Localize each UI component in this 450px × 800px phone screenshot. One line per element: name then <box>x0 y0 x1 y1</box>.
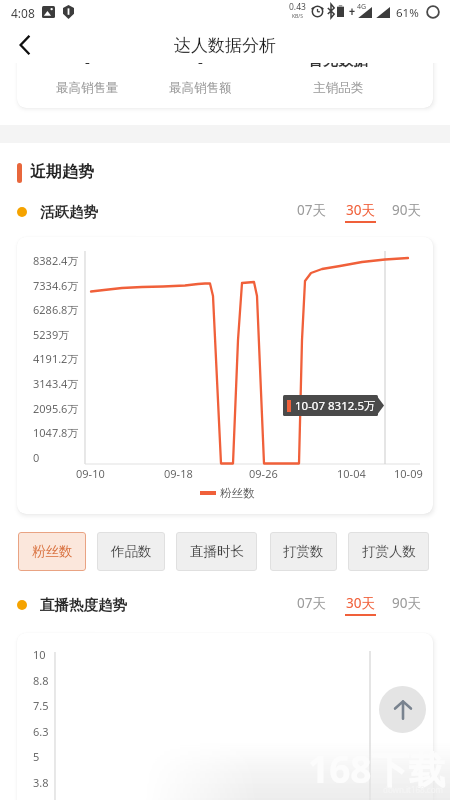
staticText: 4:08 <box>11 5 35 21</box>
staticText: 09-18 <box>164 466 193 481</box>
staticText: - <box>85 51 90 71</box>
staticText: down.it168.com <box>383 784 443 795</box>
staticText: 3143.4万 <box>33 376 79 391</box>
staticText: 07天 <box>297 201 326 219</box>
staticText: 2095.6万 <box>33 401 79 416</box>
staticText: 5 <box>33 749 40 764</box>
staticText: 10-07 8312.5万 <box>295 398 376 414</box>
staticText: 8.8 <box>33 673 49 688</box>
staticText: 粉丝数 <box>32 543 73 560</box>
staticText: 7.5 <box>33 698 49 713</box>
staticText: 主销品类 <box>313 80 363 96</box>
staticText: 30天 <box>346 594 375 612</box>
staticText: 近期趋势 <box>30 162 94 182</box>
staticText: 7334.6万 <box>33 278 79 293</box>
staticText: 09-10 <box>76 466 105 481</box>
staticText: 直播热度趋势 <box>40 596 127 614</box>
button[interactable]: 90天 <box>387 201 426 219</box>
staticText: KB/S <box>292 13 303 20</box>
staticText: 10 <box>33 647 46 662</box>
staticText: 10-09 <box>394 466 423 481</box>
staticText: 6.3 <box>33 724 49 739</box>
staticText: 6286.8万 <box>33 302 79 317</box>
staticText: 0.43 <box>289 1 306 13</box>
button[interactable]: Scroll to top <box>379 686 426 733</box>
staticText: 30天 <box>346 201 375 219</box>
staticText: 10-04 <box>337 466 366 481</box>
staticText: 打赏人数 <box>362 543 416 560</box>
staticText: 09-26 <box>249 466 278 481</box>
staticText: 8382.4万 <box>33 253 79 268</box>
staticText: 4191.2万 <box>33 351 79 366</box>
staticText: 90天 <box>392 201 421 219</box>
button[interactable]: 30天 <box>340 201 381 223</box>
staticText: 粉丝数 <box>220 486 255 500</box>
staticText: 活跃趋势 <box>40 203 98 221</box>
staticText: 90天 <box>392 594 421 612</box>
button[interactable]: 90天 <box>387 594 426 612</box>
staticText: 暂无数据 <box>308 51 368 70</box>
button[interactable]: 直播时长 <box>176 532 257 571</box>
staticText: 168下载 <box>308 743 446 794</box>
staticText: 0 <box>33 450 40 465</box>
staticText: 作品数 <box>111 543 152 560</box>
staticText: 4G <box>357 2 367 12</box>
staticText: 最高销售额 <box>169 80 232 96</box>
button[interactable]: 07天 <box>292 201 331 219</box>
button[interactable]: 作品数 <box>97 532 165 571</box>
button[interactable]: 打赏人数 <box>348 532 429 571</box>
staticText: 3.8 <box>33 775 49 790</box>
staticText: 61% <box>396 5 419 21</box>
staticText: 07天 <box>297 594 326 612</box>
button[interactable]: 打赏数 <box>270 532 337 571</box>
button[interactable]: 30天 <box>340 594 381 616</box>
button[interactable]: 07天 <box>292 594 331 612</box>
staticText: 打赏数 <box>283 543 324 560</box>
staticText: 直播时长 <box>190 543 244 560</box>
staticText: 达人数据分析 <box>174 35 276 56</box>
staticText: 最高销售量 <box>56 80 119 96</box>
staticText: 5239万 <box>33 327 70 342</box>
staticText: 1047.8万 <box>33 425 79 440</box>
button[interactable]: 粉丝数 <box>18 532 86 571</box>
staticText: - <box>198 51 203 71</box>
button[interactable]: Back <box>6 26 44 64</box>
